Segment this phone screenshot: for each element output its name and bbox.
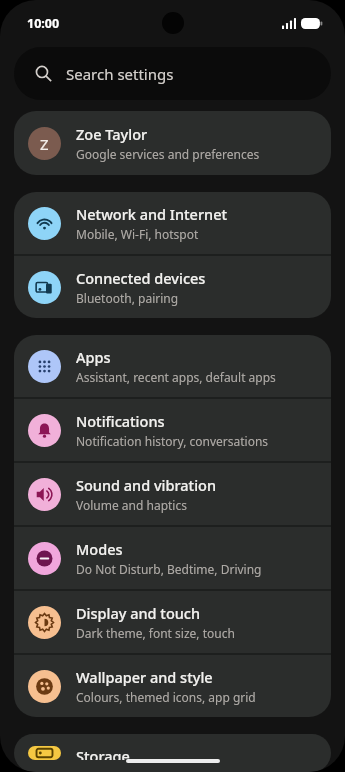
staticText: Z: [40, 134, 49, 154]
button[interactable]: Modes: [14, 527, 331, 589]
staticText: Volume and haptics: [76, 497, 187, 513]
staticText: Dark theme, font size, touch: [76, 625, 235, 641]
button[interactable]: Search settings: [14, 47, 331, 100]
staticText: Mobile, Wi-Fi, hotspot: [76, 226, 199, 242]
staticText: Wallpaper and style: [76, 667, 213, 687]
staticText: Assistant, recent apps, default apps: [76, 369, 276, 385]
staticText: Search settings: [66, 64, 174, 84]
button[interactable]: Apps: [14, 335, 331, 397]
staticText: 10:00: [27, 15, 60, 32]
staticText: Sound and vibration: [76, 475, 217, 495]
button[interactable]: Z: [14, 111, 331, 175]
button[interactable]: Display and touch: [14, 591, 331, 653]
staticText: Modes: [76, 539, 123, 559]
staticText: Connected devices: [76, 268, 206, 288]
staticText: Notifications: [76, 411, 165, 431]
button[interactable]: Connected devices: [14, 256, 331, 318]
staticText: Google services and preferences: [76, 146, 260, 162]
staticText: Display and touch: [76, 603, 201, 623]
staticText: Bluetooth, pairing: [76, 290, 179, 306]
button[interactable]: Storage: [14, 734, 331, 772]
button[interactable]: Notifications: [14, 399, 331, 461]
staticText: Colours, themed icons, app grid: [76, 689, 256, 705]
staticText: Do Not Disturb, Bedtime, Driving: [76, 561, 262, 577]
button[interactable]: Sound and vibration: [14, 463, 331, 525]
button[interactable]: Wallpaper and style: [14, 655, 331, 717]
staticText: Zoe Taylor: [76, 124, 148, 144]
staticText: Notification history, conversations: [76, 433, 269, 449]
staticText: Apps: [76, 347, 111, 367]
button[interactable]: Network and Internet: [14, 192, 331, 254]
staticText: Network and Internet: [76, 204, 228, 224]
staticText: Storage: [76, 746, 130, 760]
